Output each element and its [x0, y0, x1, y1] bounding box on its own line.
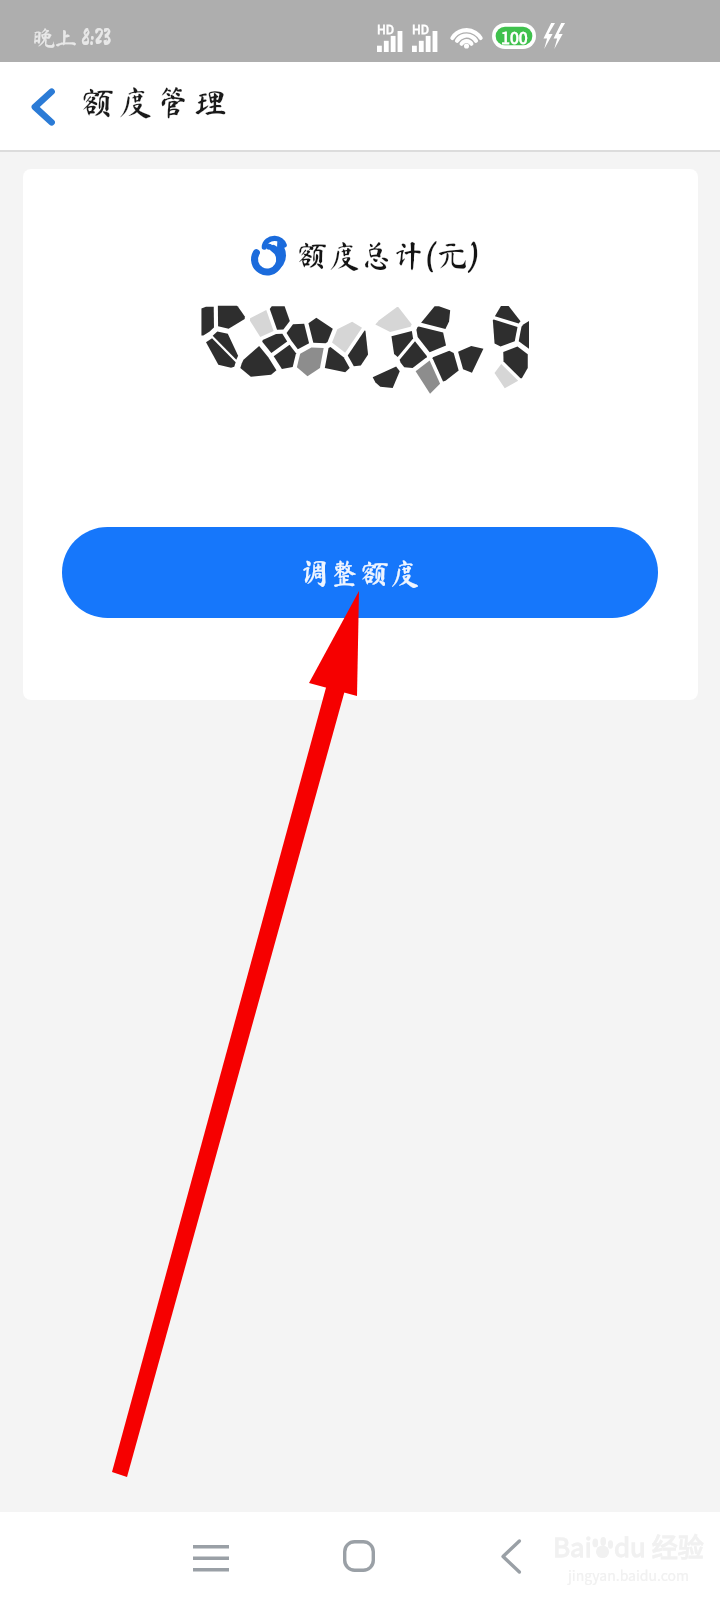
staticText: Bai — [553, 1527, 592, 1565]
staticText: 晚上 8:23 — [33, 27, 111, 49]
staticText: 100 — [501, 25, 528, 48]
button[interactable]: 调整额度 — [62, 527, 658, 618]
staticText: 额度总计(元) — [297, 240, 481, 271]
staticText: 额度管理 — [81, 85, 231, 119]
staticText: jingyan.baidu.com — [568, 1565, 689, 1585]
staticText: HD — [377, 20, 394, 37]
staticText: HD — [412, 20, 429, 37]
button[interactable]: Back — [12, 76, 74, 138]
button[interactable]: Back — [466, 1512, 556, 1600]
button[interactable]: Recent apps — [166, 1512, 256, 1600]
staticText: du 经验 — [614, 1527, 704, 1565]
button[interactable]: Home — [314, 1512, 404, 1600]
staticText: 调整额度 — [300, 558, 421, 587]
